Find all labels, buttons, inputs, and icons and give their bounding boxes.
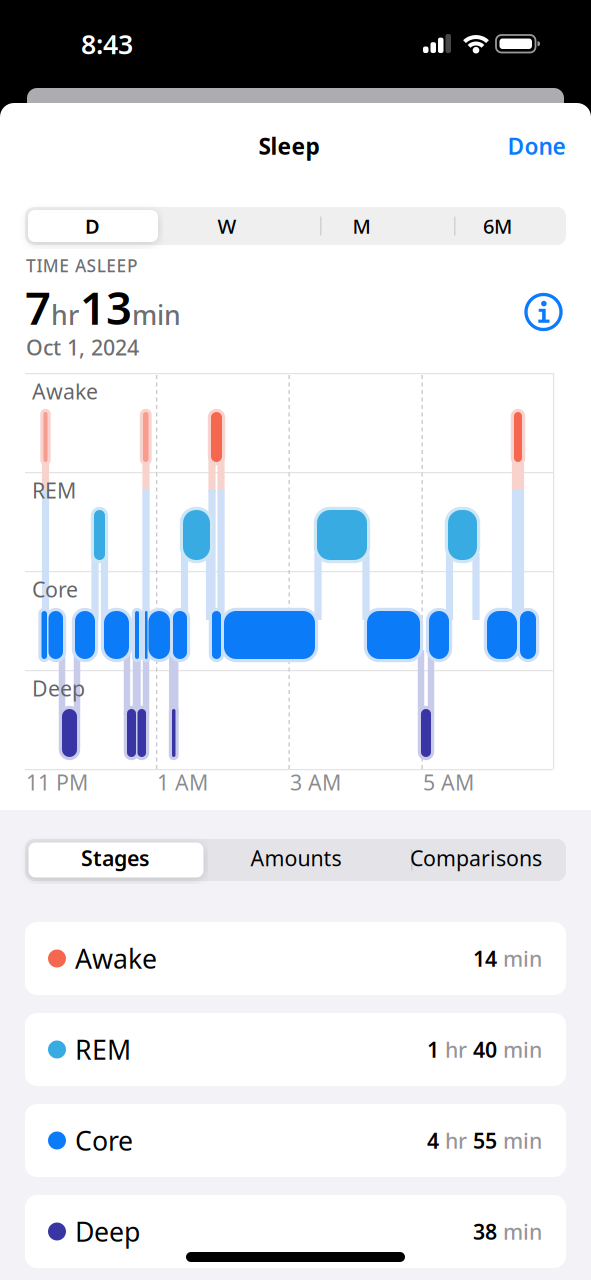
button[interactable]: Comparisons bbox=[386, 839, 566, 881]
staticText: 55 bbox=[473, 1126, 497, 1155]
button[interactable]: M bbox=[294, 207, 429, 245]
staticText: 14 bbox=[473, 944, 497, 973]
button[interactable]: About Sleep bbox=[524, 293, 562, 331]
button[interactable]: D bbox=[25, 207, 160, 245]
staticText: Awake bbox=[32, 377, 98, 405]
staticText: Done bbox=[507, 131, 565, 161]
staticText: Deep bbox=[75, 1214, 140, 1249]
staticText: 5 AM bbox=[423, 768, 474, 796]
staticText: min bbox=[497, 1217, 542, 1246]
button[interactable]: Stages bbox=[25, 839, 206, 881]
staticText: Comparisons bbox=[410, 844, 542, 872]
staticText: 8:43 bbox=[81, 26, 133, 62]
staticText: min bbox=[497, 944, 542, 973]
staticText: 13 bbox=[80, 277, 132, 337]
staticText: 38 bbox=[473, 1217, 497, 1246]
staticText: Awake bbox=[75, 941, 157, 976]
staticText: 11 PM bbox=[26, 768, 88, 796]
staticText: 7 bbox=[25, 277, 51, 337]
staticText: 4 bbox=[427, 1126, 439, 1155]
staticText: min bbox=[132, 297, 181, 332]
button[interactable]: Done bbox=[507, 131, 565, 161]
staticText: Deep bbox=[32, 674, 85, 702]
staticText: Core bbox=[75, 1123, 133, 1158]
staticText: min bbox=[497, 1126, 542, 1155]
staticText: 1 bbox=[427, 1035, 439, 1064]
button[interactable]: Amounts bbox=[206, 839, 386, 881]
staticText: REM bbox=[75, 1032, 131, 1067]
staticText: TIME ASLEEP bbox=[26, 254, 138, 277]
staticText: M bbox=[352, 213, 370, 239]
staticText: Stages bbox=[81, 844, 150, 872]
button[interactable]: W bbox=[160, 207, 294, 245]
staticText: W bbox=[217, 213, 236, 239]
button[interactable]: 6M bbox=[429, 207, 566, 245]
staticText: 40 bbox=[473, 1035, 497, 1064]
staticText: Core bbox=[32, 575, 78, 603]
staticText: D bbox=[85, 213, 100, 239]
staticText: Amounts bbox=[250, 844, 341, 872]
staticText: 1 AM bbox=[157, 768, 208, 796]
staticText: 3 AM bbox=[290, 768, 341, 796]
staticText: hr bbox=[439, 1035, 473, 1064]
staticText: Oct 1, 2024 bbox=[26, 333, 139, 361]
staticText: REM bbox=[32, 476, 76, 504]
staticText: hr bbox=[51, 297, 79, 332]
staticText: Sleep bbox=[258, 131, 319, 161]
staticText: min bbox=[497, 1035, 542, 1064]
staticText: 6M bbox=[483, 213, 512, 239]
staticText: hr bbox=[439, 1126, 473, 1155]
